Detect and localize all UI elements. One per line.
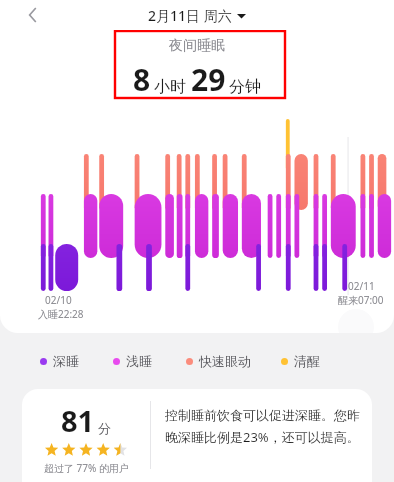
staticText: 02/10 [45,293,72,307]
button[interactable]: 清醒 [281,353,320,369]
staticText: 控制睡前饮食可以促进深睡。您昨晚深睡比例是23%，还可以提高。 [165,407,366,446]
staticText: 29 [191,59,226,100]
button[interactable]: Back [20,2,46,28]
staticText: 分钟 [229,77,261,97]
button[interactable]: 浅睡 [113,353,152,369]
staticText: 2月11日 周六 [148,6,232,25]
staticText: 超过了 77% 的用户 [44,461,129,475]
staticText: 快速眼动 [199,353,251,369]
staticText: 小时 [154,77,186,97]
button[interactable]: 快速眼动 [186,353,251,369]
staticText: 02/11 [348,279,375,293]
button[interactable]: 深睡 [40,353,79,369]
staticText: 醒来07:00 [338,293,384,307]
staticText: 分 [98,420,111,436]
staticText: 夜间睡眠 [169,37,225,55]
staticText: 入睡22:28 [38,307,84,321]
staticText: 浅睡 [126,353,152,369]
staticText: 深睡 [53,353,79,369]
button[interactable]: 81 [22,389,372,482]
staticText: 8 [133,59,151,100]
staticText: 清醒 [294,353,320,369]
button[interactable]: 2月11日 周六 [148,6,246,25]
staticText: 81 [61,401,95,440]
